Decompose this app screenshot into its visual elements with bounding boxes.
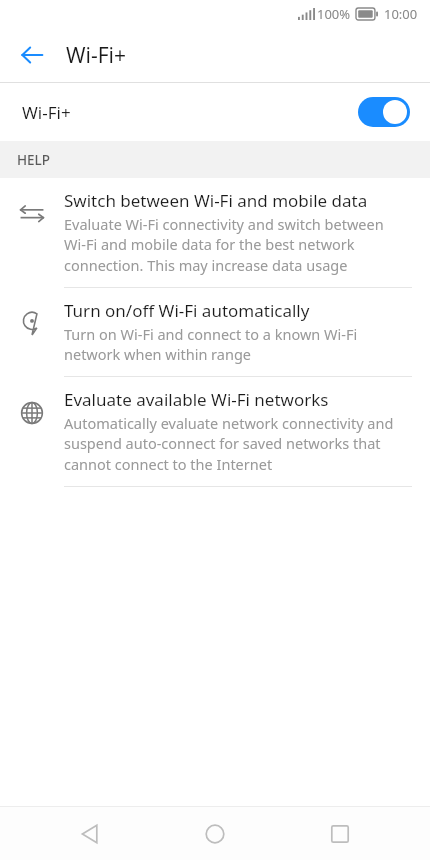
staticText: Wi-Fi+ [66, 41, 127, 70]
button[interactable]: Wi-Fi+ [0, 83, 430, 141]
button[interactable]: Switch between Wi-Fi and mobile data [0, 178, 430, 287]
staticText: Turn on/off Wi-Fi automatically [64, 299, 310, 322]
staticText: Turn on Wi-Fi and connect to a known Wi-… [64, 324, 400, 365]
button[interactable]: Wi-Fi+ on [358, 97, 410, 127]
staticText: Evaluate Wi-Fi connectivity and switch b… [64, 214, 400, 276]
staticText: Automatically evaluate network connectiv… [64, 413, 400, 475]
staticText: HELP [17, 151, 51, 169]
button[interactable]: Recents [312, 807, 368, 860]
button[interactable]: Home [187, 807, 243, 860]
button[interactable]: Back [62, 807, 118, 860]
staticText: 100% [317, 5, 351, 23]
staticText: Wi-Fi+ [22, 101, 71, 124]
button[interactable]: Turn on/off Wi-Fi automatically [0, 288, 430, 376]
button[interactable]: Back [8, 31, 56, 79]
staticText: Evaluate available Wi-Fi networks [64, 388, 329, 411]
staticText: 10:00 [384, 5, 418, 23]
button[interactable]: Evaluate available Wi-Fi networks [0, 377, 430, 486]
staticText: Switch between Wi-Fi and mobile data [64, 189, 368, 212]
